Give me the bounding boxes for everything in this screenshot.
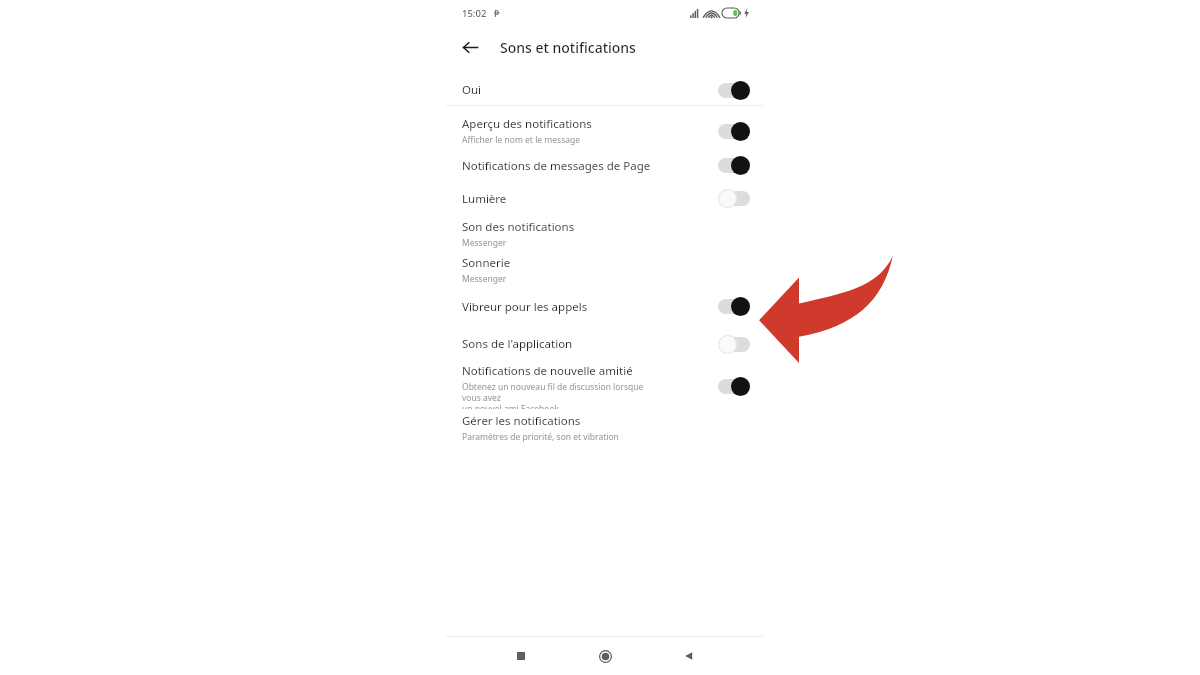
- button[interactable]: Vibreur pour les appels toggle: [715, 294, 753, 319]
- button[interactable]: Lumière toggle: [715, 186, 753, 211]
- staticText: Messenger: [462, 237, 507, 249]
- button[interactable]: Recent apps: [504, 639, 538, 673]
- button[interactable]: Lumière: [446, 181, 763, 216]
- button[interactable]: Notifications de nouvelle amitié toggle: [715, 374, 753, 399]
- staticText: Notifications de nouvelle amitié: [462, 363, 633, 379]
- staticText: Gérer les notifications: [462, 413, 581, 429]
- button[interactable]: Sons de l'application: [446, 325, 763, 363]
- button[interactable]: Notifications de messages de Page toggle: [715, 153, 753, 178]
- button[interactable]: Notifications de messages de Page: [446, 150, 763, 181]
- button[interactable]: Aperçu des notifications: [446, 112, 763, 150]
- staticText: Paramètres de priorité, son et vibration: [462, 431, 619, 443]
- staticText: Aperçu des notifications: [462, 116, 592, 132]
- staticText: Vibreur pour les appels: [462, 299, 588, 315]
- button[interactable]: Sonnerie: [446, 252, 763, 288]
- button[interactable]: Notifications de nouvelle amitié: [446, 363, 763, 409]
- button[interactable]: Gérer les notifications: [446, 409, 763, 447]
- button[interactable]: Son des notifications: [446, 216, 763, 252]
- staticText: Obtenez un nouveau fil de discussion lor…: [462, 381, 657, 409]
- staticText: Lumière: [462, 191, 507, 207]
- button[interactable]: Oui toggle: [715, 78, 753, 103]
- staticText: Messenger: [462, 273, 507, 285]
- button[interactable]: Vibreur pour les appels: [446, 288, 763, 325]
- button[interactable]: Sons de l'application toggle: [715, 332, 753, 357]
- staticText: Afficher le nom et le message: [462, 134, 581, 146]
- button[interactable]: Oui: [446, 76, 763, 104]
- staticText: Son des notifications: [462, 219, 575, 235]
- staticText: 15:02: [462, 7, 487, 20]
- button[interactable]: Back: [454, 31, 486, 63]
- staticText: Sonnerie: [462, 255, 511, 271]
- staticText: Sons de l'application: [462, 336, 573, 352]
- staticText: Notifications de messages de Page: [462, 158, 651, 174]
- button[interactable]: Back: [672, 639, 706, 673]
- staticText: Oui: [462, 82, 482, 98]
- button[interactable]: Aperçu des notifications toggle: [715, 119, 753, 144]
- staticText: ₱: [494, 7, 500, 20]
- button[interactable]: Home: [588, 639, 622, 673]
- staticText: Sons et notifications: [500, 38, 636, 57]
